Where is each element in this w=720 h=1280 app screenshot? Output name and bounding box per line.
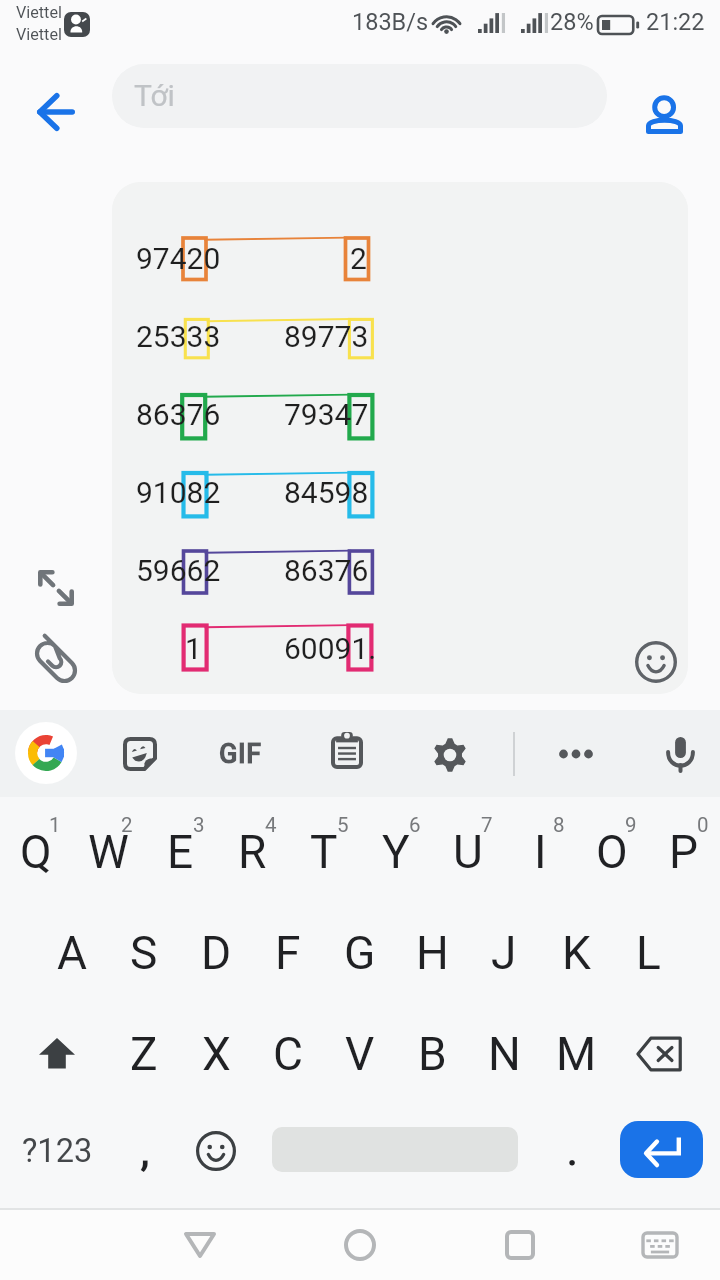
staticText: 4 <box>265 813 277 837</box>
button[interactable]: F <box>252 913 324 993</box>
button[interactable]: Settings <box>421 726 478 783</box>
staticText: Viettel <box>16 25 62 44</box>
staticText: 28% <box>550 8 594 36</box>
button[interactable]: B <box>396 1014 468 1094</box>
button[interactable]: , <box>109 1111 181 1191</box>
staticText: A <box>57 926 88 980</box>
button[interactable]: Google Assistant <box>15 722 77 784</box>
button[interactable]: Tới <box>112 64 607 128</box>
staticText: GIF <box>219 738 262 770</box>
staticText: O <box>596 825 628 879</box>
button[interactable]: ?123 <box>14 1111 100 1191</box>
staticText: 21:22 <box>646 8 705 36</box>
button[interactable]: Keyboard <box>620 1210 700 1280</box>
button[interactable]: V <box>324 1014 396 1094</box>
staticText: Y <box>382 825 410 879</box>
staticText: Z <box>130 1027 158 1081</box>
staticText: 79347 <box>284 397 369 432</box>
staticText: 89773 <box>284 319 369 354</box>
button[interactable]: Z <box>108 1014 180 1094</box>
staticText: . <box>567 1128 578 1175</box>
staticText: 1 <box>49 813 61 837</box>
button[interactable]: L <box>612 913 684 993</box>
staticText: X <box>202 1027 231 1081</box>
button[interactable]: A <box>36 913 108 993</box>
button[interactable]: N <box>468 1014 540 1094</box>
staticText: 5 <box>337 813 349 837</box>
staticText: M <box>556 1027 597 1081</box>
button[interactable]: . <box>536 1111 608 1191</box>
button[interactable]: Home <box>320 1210 400 1280</box>
staticText: T <box>310 825 338 879</box>
staticText: S <box>130 926 158 980</box>
staticText: ?123 <box>22 1132 93 1170</box>
staticText: 84598 <box>284 475 369 510</box>
staticText: K <box>562 926 591 980</box>
staticText: V <box>345 1027 375 1081</box>
button[interactable]: W <box>72 812 144 892</box>
staticText: 59662 <box>136 553 221 588</box>
staticText: 86376 <box>136 397 221 432</box>
staticText: E <box>167 825 194 879</box>
button[interactable]: Clipboard <box>318 722 375 779</box>
button[interactable]: Backspace <box>622 1014 698 1094</box>
button[interactable]: Y <box>360 812 432 892</box>
button[interactable]: Voice input <box>652 725 709 782</box>
staticText: G <box>344 926 376 980</box>
button[interactable]: K <box>540 913 612 993</box>
staticText: N <box>488 1027 521 1081</box>
button[interactable]: GIF <box>214 726 270 782</box>
button[interactable]: J <box>468 913 540 993</box>
button[interactable]: H <box>396 913 468 993</box>
button[interactable]: Add contact <box>628 79 700 151</box>
button[interactable]: O <box>576 812 648 892</box>
staticText: P <box>669 825 699 879</box>
staticText: D <box>201 926 232 980</box>
button[interactable]: More options <box>550 726 606 782</box>
staticText: Tới <box>134 78 175 113</box>
button[interactable]: P <box>648 812 720 892</box>
button[interactable]: Recents <box>480 1210 560 1280</box>
button[interactable]: Stickers <box>112 726 168 782</box>
staticText: 0 <box>697 813 709 837</box>
staticText: 7 <box>481 813 493 837</box>
button[interactable]: I <box>504 812 576 892</box>
button[interactable]: Attach <box>22 628 90 696</box>
button[interactable]: Back <box>16 72 96 152</box>
button[interactable]: U <box>432 812 504 892</box>
button[interactable]: Emoji <box>628 634 684 690</box>
staticText: J <box>491 926 517 980</box>
staticText: 2 <box>350 241 367 276</box>
button[interactable]: Enter <box>620 1121 703 1178</box>
button[interactable]: D <box>180 913 252 993</box>
button[interactable]: G <box>324 913 396 993</box>
staticText: 97420 <box>136 241 221 276</box>
button[interactable]: Back <box>160 1210 240 1280</box>
button[interactable]: Emoji <box>180 1111 252 1191</box>
staticText: , <box>141 1128 149 1175</box>
button[interactable]: X <box>180 1014 252 1094</box>
staticText: 91082 <box>136 475 221 510</box>
button[interactable]: C <box>252 1014 324 1094</box>
button[interactable]: Q <box>0 812 72 892</box>
button[interactable]: T <box>288 812 360 892</box>
staticText: 86376 <box>284 553 369 588</box>
button[interactable]: Expand <box>22 554 90 622</box>
button[interactable]: R <box>216 812 288 892</box>
staticText: 3 <box>193 813 205 837</box>
button[interactable]: Shift <box>17 1014 97 1094</box>
button[interactable]: E <box>144 812 216 892</box>
staticText: H <box>416 926 449 980</box>
staticText: U <box>453 825 483 879</box>
staticText: 183B/s <box>352 8 429 36</box>
button[interactable]: S <box>108 913 180 993</box>
staticText: 60091. <box>284 631 377 666</box>
staticText: Q <box>20 825 52 879</box>
staticText: L <box>636 926 661 980</box>
staticText: 2 <box>121 813 133 837</box>
staticText: I <box>534 825 547 879</box>
staticText: B <box>418 1027 447 1081</box>
button[interactable]: M <box>540 1014 612 1094</box>
staticText: 1 <box>185 631 202 666</box>
